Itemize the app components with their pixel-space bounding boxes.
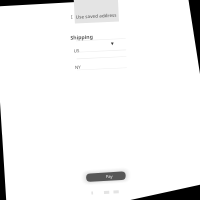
button[interactable] [72,40,130,52]
button[interactable]: Back [87,187,96,196]
button[interactable] [73,58,131,70]
button[interactable] [86,172,126,182]
button[interactable]: Use saved address [73,0,118,24]
button[interactable]: Recents [113,186,123,195]
button[interactable]: Home [101,187,112,196]
